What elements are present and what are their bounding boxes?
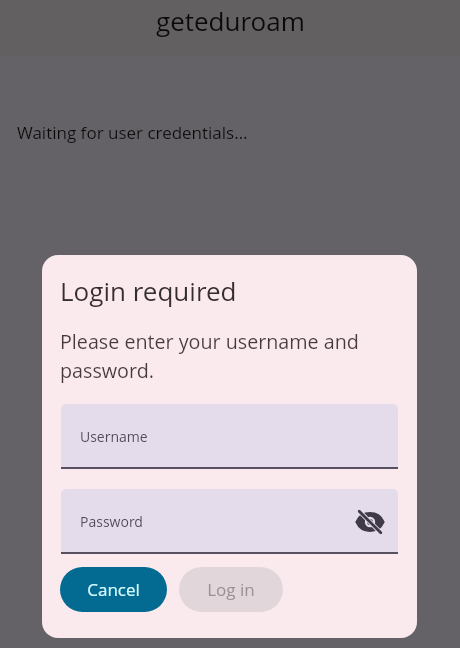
- staticText: Log in: [207, 578, 255, 601]
- staticText: Waiting for user credentials…: [17, 121, 248, 144]
- button[interactable]: Password: [61, 489, 398, 554]
- staticText: Login required: [60, 273, 237, 308]
- staticText: Username: [80, 427, 148, 446]
- button[interactable]: Cancel: [60, 567, 167, 612]
- staticText: Password: [80, 512, 143, 531]
- staticText: Please enter your username and password.: [60, 328, 380, 384]
- staticText: Cancel: [87, 578, 140, 601]
- button[interactable]: Log in: [179, 567, 283, 612]
- staticText: geteduroam: [156, 3, 305, 38]
- button[interactable]: Show password: [353, 505, 387, 539]
- button[interactable]: Username: [61, 404, 398, 469]
